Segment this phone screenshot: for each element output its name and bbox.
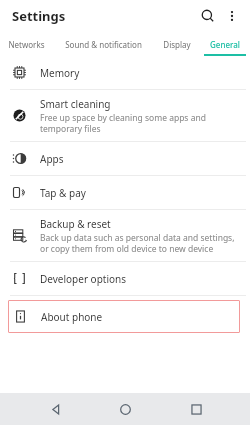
staticText: Apps <box>40 152 64 166</box>
button[interactable]: Sound & notification <box>53 32 153 56</box>
staticText: Networks <box>8 39 45 50</box>
button[interactable]: Search <box>196 4 220 28</box>
staticText: Tap & pay <box>40 186 86 200</box>
staticText: About phone <box>41 310 103 324</box>
staticText: Memory <box>40 66 80 80</box>
button[interactable]: Recent apps <box>180 393 212 425</box>
button[interactable]: Backup & reset <box>0 210 250 261</box>
staticText: Back up data such as personal data and s… <box>40 232 242 254</box>
staticText: Smart cleaning <box>40 97 111 111</box>
button[interactable]: General <box>200 32 250 56</box>
button[interactable]: Tap & pay <box>0 176 250 209</box>
button[interactable]: Memory <box>0 56 250 89</box>
button[interactable]: Smart cleaning <box>0 90 250 141</box>
staticText: Settings <box>12 7 66 25</box>
staticText: Display <box>163 39 191 50</box>
staticText: Sound & notification <box>65 39 142 50</box>
staticText: Free up space by cleaning some apps and … <box>40 112 242 134</box>
button[interactable]: Apps <box>0 142 250 175</box>
button[interactable]: About phone <box>8 300 240 333</box>
button[interactable]: Networks <box>0 32 53 56</box>
staticText: Developer options <box>40 272 127 286</box>
button[interactable]: Back <box>39 393 71 425</box>
button[interactable]: Developer options <box>0 262 250 295</box>
button[interactable]: Display <box>153 32 200 56</box>
button[interactable]: More options <box>220 4 244 28</box>
button[interactable]: Home <box>109 393 141 425</box>
staticText: General <box>210 39 240 50</box>
staticText: Backup & reset <box>40 217 111 231</box>
